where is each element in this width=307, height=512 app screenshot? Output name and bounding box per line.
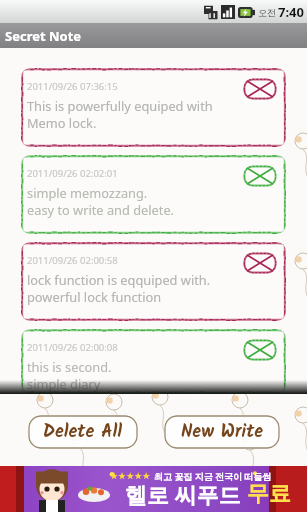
staticText: Delete All — [43, 418, 123, 447]
staticText: simple diary — [27, 375, 101, 392]
staticText: lock function is eqquiped with. — [27, 271, 211, 288]
staticText: 2011/09/26 02:00:58 — [27, 254, 118, 267]
staticText: New Write — [181, 418, 264, 447]
button[interactable]: Locked note — [243, 78, 277, 100]
button[interactable]: Locked note — [243, 165, 277, 187]
button[interactable]: Delete All — [28, 415, 138, 449]
staticText: Memo lock. — [27, 114, 97, 131]
button[interactable]: New Write — [164, 415, 280, 449]
staticText: simple memozzang. — [27, 184, 148, 201]
staticText: 2011/09/26 02:02:01 — [27, 167, 118, 180]
staticText: This is powerfully equiped with — [27, 97, 213, 114]
staticText: 헬로 씨푸드 — [125, 479, 241, 509]
staticText: powerful lock function — [27, 288, 162, 305]
staticText: ★★★★★ — [110, 471, 151, 481]
staticText: 2011/09/26 07:36:15 — [27, 80, 118, 93]
button[interactable]: 2011/09/26 02:02:01 — [21, 155, 286, 234]
button[interactable]: 2011/09/26 07:36:15 — [21, 68, 286, 147]
staticText: 무료 — [247, 480, 291, 508]
staticText: Secret Note — [5, 27, 82, 45]
button[interactable]: 2011/09/26 02:00:58 — [21, 242, 286, 321]
staticText: this is second. — [27, 358, 112, 375]
staticText: easy to write and delete. — [27, 201, 175, 218]
button[interactable]: Advertisement — [0, 466, 307, 512]
staticText: 오전 — [258, 7, 276, 18]
staticText: 7:40 — [278, 3, 304, 21]
staticText: 최고 꽃집 지금 전국이 떠들썸 — [154, 470, 272, 482]
button[interactable]: 2011/09/26 02:00:08 — [21, 329, 286, 394]
staticText: 2011/09/26 02:00:08 — [27, 341, 118, 354]
button[interactable]: Locked note — [243, 339, 277, 361]
button[interactable]: Locked note — [243, 252, 277, 274]
